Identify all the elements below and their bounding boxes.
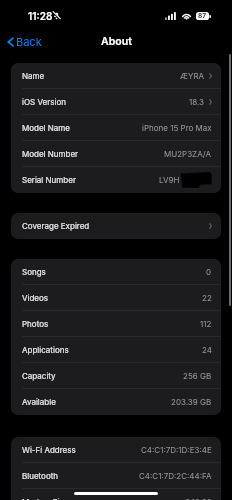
staticText: 24 bbox=[202, 345, 212, 355]
staticText: About bbox=[101, 35, 132, 48]
button[interactable]: Coverage Expired bbox=[11, 213, 221, 239]
button[interactable]: Videos bbox=[11, 285, 221, 311]
staticText: Model Name bbox=[22, 123, 70, 133]
button[interactable]: Model Name bbox=[11, 115, 221, 141]
button[interactable]: Bluetooth bbox=[11, 463, 221, 489]
staticText: Name bbox=[22, 71, 45, 81]
staticText: Modem Firmware bbox=[22, 497, 89, 500]
staticText: C4:C1:7D:2C:44:FA bbox=[139, 471, 212, 481]
staticText: ÆYRA bbox=[180, 71, 205, 81]
staticText: C4:C1:7D:1D:E3:4E bbox=[141, 445, 212, 455]
staticText: Coverage Expired bbox=[22, 221, 90, 231]
button[interactable]: Model Number bbox=[11, 141, 221, 167]
staticText: 22 bbox=[202, 293, 212, 303]
staticText: Wi-Fi Address bbox=[22, 445, 76, 455]
staticText: Available bbox=[22, 397, 56, 407]
staticText: 256 GB bbox=[183, 371, 212, 381]
button[interactable]: Available bbox=[11, 389, 221, 415]
button[interactable]: iOS Version bbox=[11, 89, 221, 115]
button[interactable]: Modem Firmware bbox=[11, 489, 221, 500]
staticText: Model Number bbox=[22, 149, 79, 159]
staticText: Serial Number bbox=[22, 175, 76, 185]
staticText: 87 bbox=[198, 12, 207, 20]
staticText: 0 bbox=[206, 267, 212, 277]
button[interactable]: Photos bbox=[11, 311, 221, 337]
staticText: Back bbox=[16, 35, 42, 48]
staticText: LV9H bbox=[159, 175, 180, 185]
button[interactable]: Capacity bbox=[11, 363, 221, 389]
button[interactable]: Name bbox=[11, 63, 221, 89]
staticText: 203.39 GB bbox=[171, 397, 212, 407]
button[interactable]: Wi-Fi Address bbox=[11, 437, 221, 463]
staticText: MU2P3ZA/A bbox=[164, 149, 212, 159]
staticText: Songs bbox=[22, 267, 46, 277]
staticText: Videos bbox=[22, 293, 49, 303]
staticText: Applications bbox=[22, 345, 69, 355]
button[interactable]: Applications bbox=[11, 337, 221, 363]
staticText: 112 bbox=[200, 319, 212, 329]
staticText: Bluetooth bbox=[22, 471, 59, 481]
button[interactable]: Back bbox=[0, 31, 50, 52]
button[interactable]: Songs bbox=[11, 259, 221, 285]
staticText: Photos bbox=[22, 319, 49, 329]
button[interactable]: Serial Number bbox=[11, 167, 221, 193]
staticText: 18.3 bbox=[189, 97, 205, 107]
staticText: Capacity bbox=[22, 371, 56, 381]
staticText: 11:28 bbox=[28, 10, 53, 22]
staticText: iOS Version bbox=[22, 97, 66, 107]
staticText: 2.10.02 bbox=[185, 497, 212, 500]
staticText: iPhone 15 Pro Max bbox=[142, 123, 212, 133]
